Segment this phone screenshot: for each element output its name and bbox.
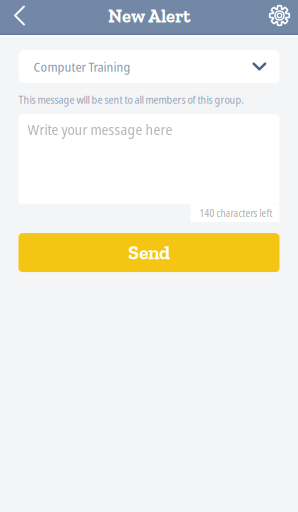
staticText: This message will be sent to all members… xyxy=(18,92,244,107)
button[interactable]: Back xyxy=(0,0,44,34)
button[interactable]: Computer Training xyxy=(18,50,279,83)
button[interactable]: Settings xyxy=(254,0,298,34)
button[interactable]: Send xyxy=(18,233,279,272)
staticText: 140 characters left xyxy=(199,206,272,220)
staticText: Send xyxy=(128,241,170,264)
staticText: Write your message here xyxy=(27,119,172,139)
staticText: New Alert xyxy=(108,5,190,27)
staticText: Computer Training xyxy=(33,57,130,76)
